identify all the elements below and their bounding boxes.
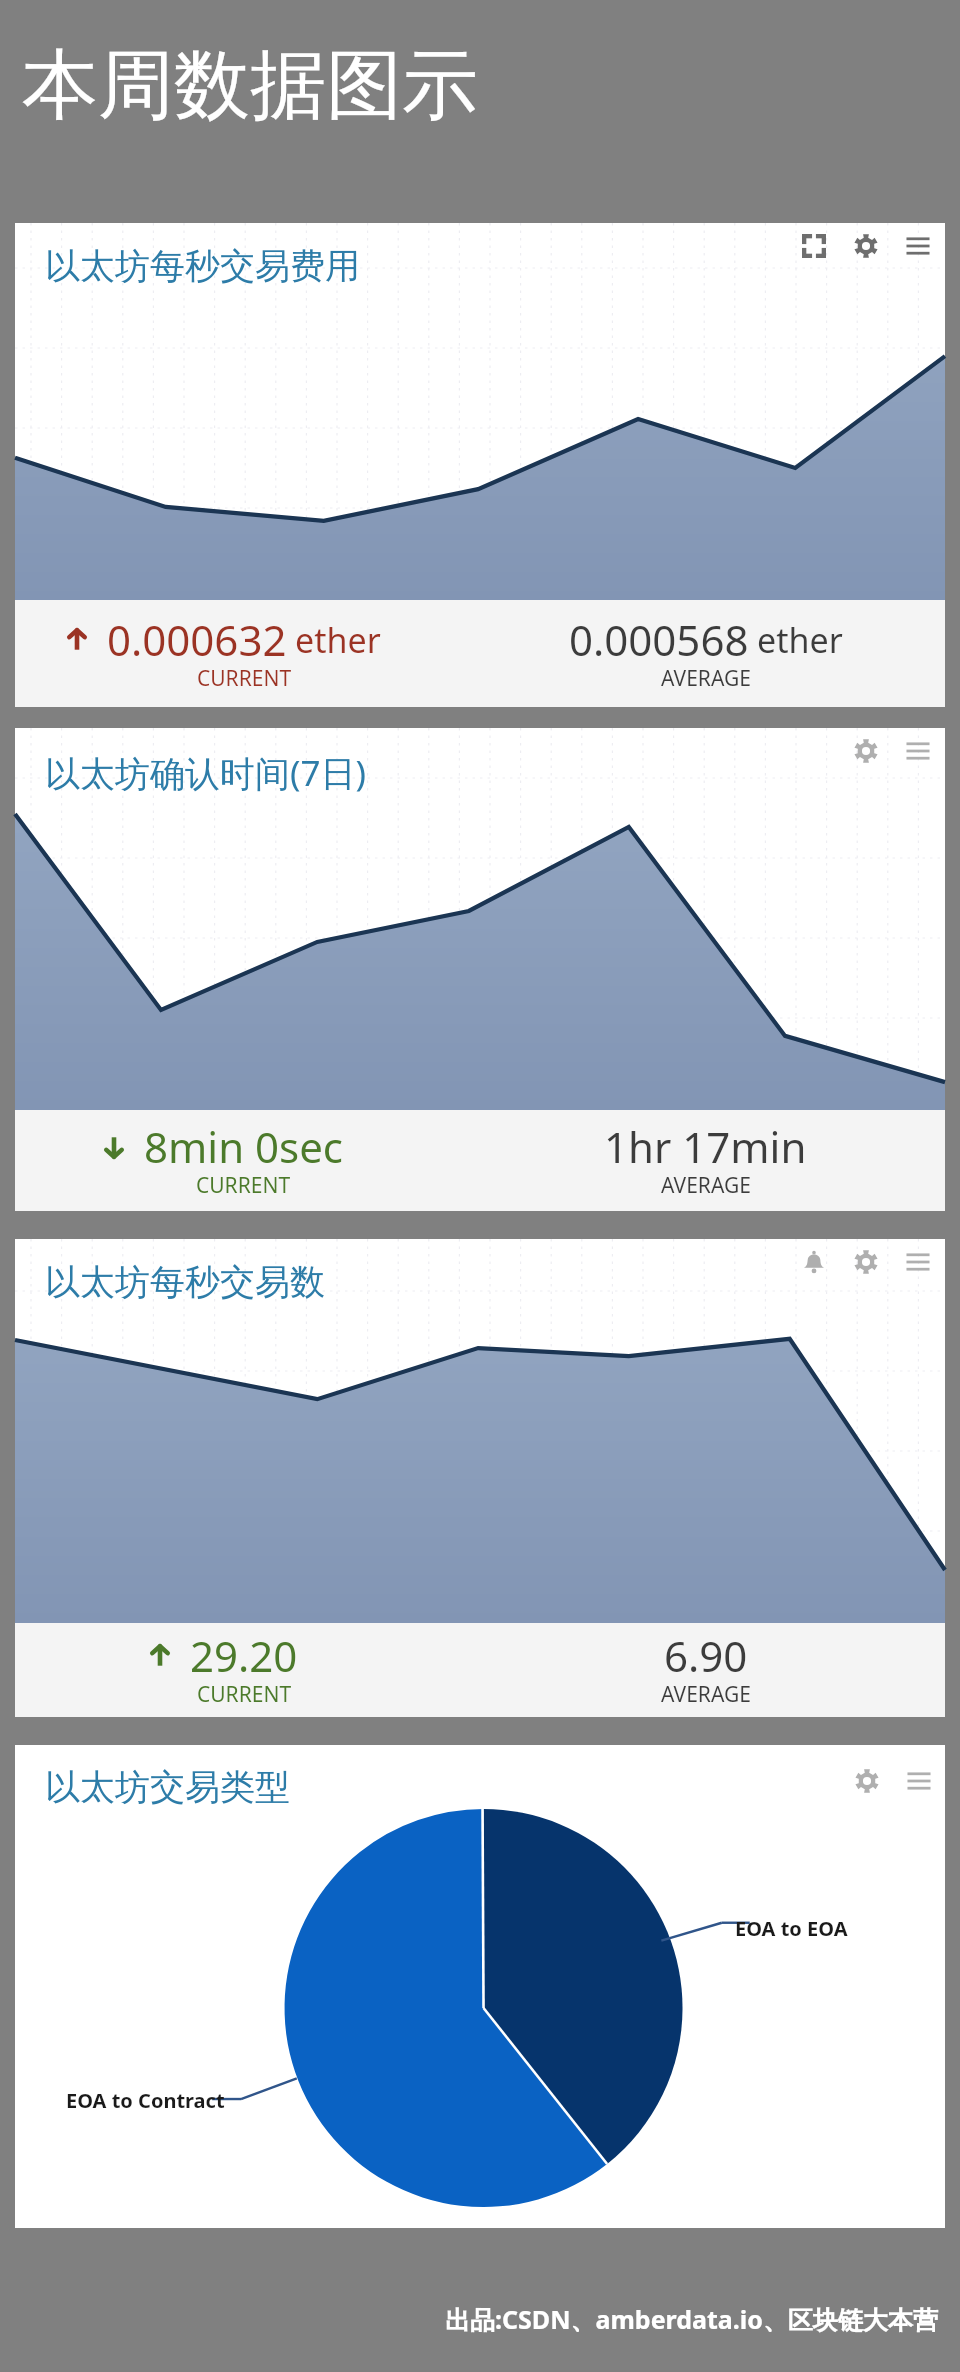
button[interactable]: Menu <box>892 220 944 272</box>
staticText: CURRENT <box>196 1171 291 1200</box>
staticText: EOA to EOA <box>735 1915 848 1942</box>
button[interactable]: Menu <box>892 1236 944 1288</box>
staticText: 以太坊交易类型 <box>45 1765 290 1809</box>
staticText: 29.20 <box>190 1627 298 1684</box>
staticText: 以太坊每秒交易数 <box>45 1260 325 1304</box>
button[interactable]: Menu <box>892 725 944 777</box>
staticText: CURRENT <box>197 1680 292 1709</box>
button[interactable]: 以太坊确认时间(7日) <box>15 728 945 1211</box>
staticText: ether <box>295 617 381 663</box>
button[interactable]: Settings <box>841 1755 893 1807</box>
button[interactable]: Settings <box>840 725 892 777</box>
staticText: EOA to Contract <box>66 2087 225 2114</box>
button[interactable]: 以太坊每秒交易费用 <box>15 223 945 707</box>
button[interactable]: Menu <box>893 1755 945 1807</box>
staticText: 以太坊确认时间(7日) <box>45 749 367 797</box>
button[interactable]: Settings <box>840 1236 892 1288</box>
staticText: 0.000568 <box>569 611 749 668</box>
staticText: 出品:CSDN、amberdata.io、区块链大本营 <box>445 2302 938 2336</box>
staticText: 6.90 <box>664 1627 748 1684</box>
staticText: CURRENT <box>197 664 292 693</box>
button[interactable]: Fullscreen <box>788 220 840 272</box>
staticText: AVERAGE <box>661 664 751 693</box>
button[interactable]: Notifications <box>788 1236 840 1288</box>
staticText: AVERAGE <box>661 1171 751 1200</box>
button[interactable]: 以太坊交易类型 <box>15 1745 945 2228</box>
staticText: AVERAGE <box>661 1680 751 1709</box>
staticText: 本周数据图示 <box>22 38 478 134</box>
staticText: 8min 0sec <box>144 1118 343 1175</box>
button[interactable]: 以太坊每秒交易数 <box>15 1239 945 1717</box>
staticText: 1hr 17min <box>604 1118 807 1175</box>
staticText: ether <box>757 617 843 663</box>
staticText: 0.000632 <box>107 611 287 668</box>
button[interactable]: Settings <box>840 220 892 272</box>
staticText: 以太坊每秒交易费用 <box>45 244 360 288</box>
